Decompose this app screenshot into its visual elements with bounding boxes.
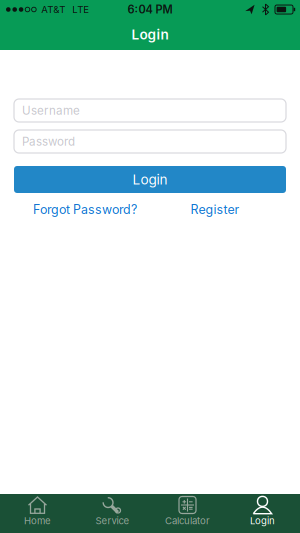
staticText: Forgot Password? (33, 202, 137, 217)
staticText: Calculator (165, 515, 210, 527)
button[interactable]: Home (0, 494, 75, 533)
button[interactable]: Username (0, 99, 300, 122)
button[interactable]: Forgot Password? (20, 202, 150, 217)
staticText: Service (95, 515, 129, 527)
staticText: Login (250, 515, 275, 527)
staticText: Register (190, 202, 239, 217)
button[interactable]: Register (150, 202, 280, 217)
staticText: Home (24, 515, 51, 527)
button[interactable]: Password (0, 130, 300, 153)
staticText: AT&T (41, 4, 65, 15)
staticText: Login (131, 26, 168, 43)
button[interactable]: Calculator (150, 494, 225, 533)
button[interactable]: Login (225, 494, 300, 533)
staticText: Username (22, 103, 80, 117)
staticText: Login (132, 171, 167, 188)
staticText: 6:04 PM (127, 3, 172, 16)
staticText: LTE (72, 4, 89, 15)
button[interactable]: Login (14, 166, 286, 193)
button[interactable]: Service (75, 494, 150, 533)
staticText: Password (22, 134, 75, 148)
